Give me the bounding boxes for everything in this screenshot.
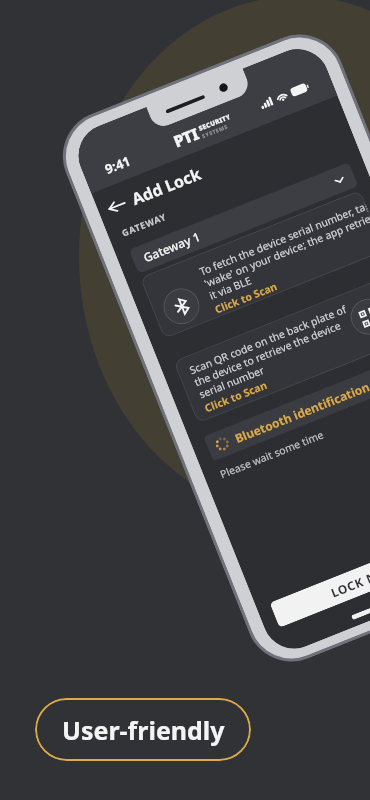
staticText: SYSTEMS (201, 122, 229, 139)
other: Expand (332, 173, 347, 187)
staticText: GATEWAY (120, 210, 168, 238)
staticText: User-friendly (62, 713, 225, 747)
staticText: Gateway 1 (141, 228, 202, 265)
staticText: Scan QR code on the back plate of the de… (187, 302, 358, 401)
staticText: To fetch the device serial number, tap '… (197, 199, 370, 303)
other: Scan QR code (358, 306, 370, 328)
staticText: PTI (170, 122, 202, 152)
button[interactable]: Gateway 1 (129, 162, 359, 274)
staticText: Add Lock (128, 163, 204, 210)
button[interactable]: Click to Scan (202, 378, 269, 415)
button[interactable]: Click to Scan (213, 279, 279, 316)
button[interactable]: Bluetooth identification (203, 349, 370, 461)
button[interactable]: User-friendly (35, 698, 251, 761)
button[interactable]: Scan QR code on the back plate of the de… (173, 273, 370, 423)
staticText: SECURITY (197, 112, 232, 133)
staticText: 9:41 (102, 152, 133, 178)
button[interactable]: Bluetooth (140, 190, 370, 339)
button[interactable]: Back (91, 95, 353, 233)
staticText: Please wait some time (218, 427, 326, 481)
staticText: LOCK NOT FOUND (328, 543, 370, 601)
other: Bluetooth (171, 295, 193, 318)
other: Back (105, 194, 128, 218)
staticText: Bluetooth identification (232, 378, 370, 446)
button[interactable]: LOCK NOT FOUND (269, 515, 370, 628)
